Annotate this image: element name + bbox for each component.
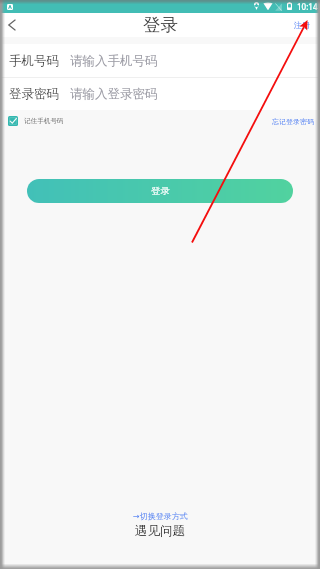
button[interactable]: 手机号码 xyxy=(0,44,320,77)
staticText: →切换登录方式 xyxy=(133,511,188,521)
button[interactable]: Back xyxy=(0,13,24,37)
staticText: 记住手机号码 xyxy=(24,117,64,125)
button[interactable]: 遇见问题 xyxy=(125,520,195,542)
staticText: 10:14 xyxy=(297,1,318,12)
staticText: 忘记登录密码 xyxy=(272,117,314,126)
button[interactable]: 记住手机号码 xyxy=(8,116,64,126)
button[interactable]: 登录密码 xyxy=(0,78,320,110)
staticText: 登录 xyxy=(143,14,178,36)
button[interactable]: 注册 xyxy=(285,15,320,35)
staticText: 请输入手机号码 xyxy=(70,53,158,69)
button[interactable]: 忘记登录密码 xyxy=(272,117,314,126)
staticText: 注册 xyxy=(294,20,310,30)
staticText: 登录密码 xyxy=(9,86,59,102)
button[interactable]: →切换登录方式 xyxy=(123,508,198,524)
staticText: 登录 xyxy=(151,185,170,197)
staticText: 手机号码 xyxy=(9,53,59,69)
staticText: 遇见问题 xyxy=(135,523,185,539)
staticText: 请输入登录密码 xyxy=(70,86,158,102)
button[interactable]: 登录 xyxy=(27,179,293,203)
